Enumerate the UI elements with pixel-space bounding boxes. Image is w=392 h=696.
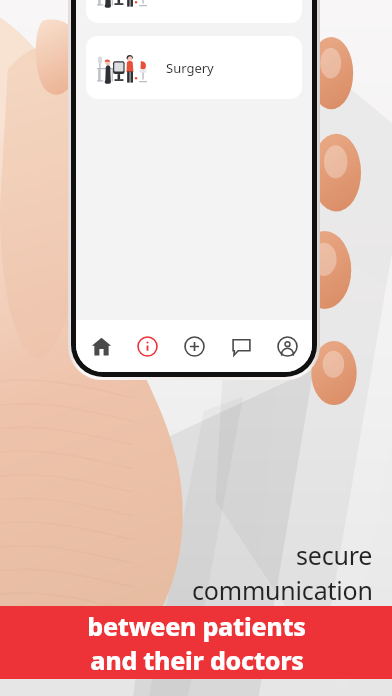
button[interactable]: Info: [125, 324, 169, 368]
button[interactable]: Surgery: [86, 36, 302, 99]
staticText: Surgery: [166, 59, 214, 77]
button[interactable]: Messages: [219, 324, 263, 368]
staticText: between patients: [87, 609, 306, 643]
staticText: secure: [296, 538, 373, 572]
button[interactable]: Profile: [265, 324, 309, 368]
button[interactable]: IV Infusion: [86, 0, 302, 23]
staticText: and their doctors: [90, 643, 304, 677]
button[interactable]: Add: [172, 324, 216, 368]
staticText: communication: [192, 573, 373, 607]
button[interactable]: Home: [79, 324, 123, 368]
